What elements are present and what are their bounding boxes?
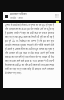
button[interactable]: Apps (54, 13, 60, 19)
staticText: दुनिया के सबसे बड़े लोकतंत्र में चुनाव क… (5, 24, 54, 75)
button[interactable]: Menu (4, 14, 9, 19)
staticText: अपडेट · आज (10, 16, 23, 20)
staticText: समाचार पत्रिका (10, 12, 27, 16)
